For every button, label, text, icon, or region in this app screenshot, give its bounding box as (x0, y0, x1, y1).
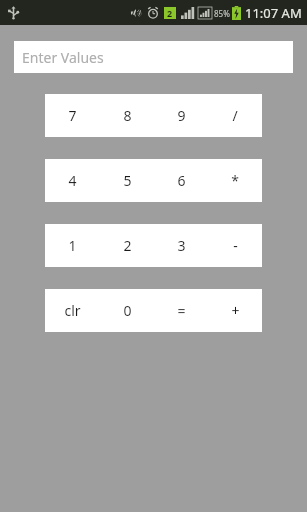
button[interactable]: 5 (100, 159, 154, 202)
staticText: + (231, 301, 240, 320)
staticText: 1 (68, 236, 77, 255)
button[interactable]: / (208, 94, 262, 137)
staticText: 11:07 AM (245, 4, 302, 22)
button[interactable]: = (154, 289, 208, 332)
staticText: 8 (123, 106, 132, 125)
button[interactable]: 2 (100, 224, 154, 267)
staticText: 2 (167, 7, 173, 19)
button[interactable]: 0 (100, 289, 154, 332)
button[interactable]: 1 (45, 224, 100, 267)
staticText: 6 (177, 171, 186, 190)
button[interactable]: 8 (100, 94, 154, 137)
staticText: 4 (68, 171, 77, 190)
staticText: * (231, 171, 239, 190)
button[interactable]: clr (45, 289, 100, 332)
staticText: clr (64, 301, 81, 320)
staticText: 5 (123, 171, 132, 190)
button[interactable]: 7 (45, 94, 100, 137)
staticText: 3 (177, 236, 186, 255)
button[interactable]: 3 (154, 224, 208, 267)
button[interactable]: * (208, 159, 262, 202)
staticText: 85% (214, 8, 230, 19)
staticText: 7 (68, 106, 77, 125)
staticText: 9 (177, 106, 186, 125)
button[interactable]: 9 (154, 94, 208, 137)
button[interactable]: + (208, 289, 262, 332)
button[interactable]: Enter Values (14, 41, 293, 73)
staticText: 0 (123, 301, 132, 320)
staticText: Enter Values (22, 48, 104, 67)
button[interactable]: 4 (45, 159, 100, 202)
button[interactable]: 6 (154, 159, 208, 202)
staticText: - (233, 236, 238, 255)
staticText: / (232, 106, 238, 125)
button[interactable]: - (208, 224, 262, 267)
staticText: = (177, 301, 186, 320)
staticText: 2 (123, 236, 132, 255)
